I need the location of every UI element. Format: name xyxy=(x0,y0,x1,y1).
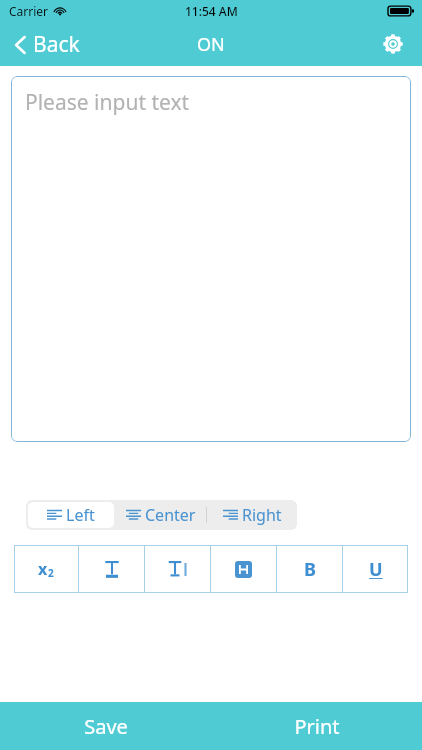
button[interactable]: Save xyxy=(0,702,211,750)
staticText: 11:54 AM xyxy=(185,3,238,19)
button[interactable]: Right xyxy=(207,500,297,530)
button[interactable]: Left xyxy=(28,502,114,528)
staticText: U xyxy=(369,557,383,582)
staticText: Carrier xyxy=(9,3,49,19)
staticText: Right xyxy=(242,504,282,526)
staticText: x xyxy=(38,558,48,580)
staticText: Center xyxy=(145,504,196,526)
staticText: Back xyxy=(33,30,80,59)
button[interactable]: Center xyxy=(116,500,206,530)
staticText: Print xyxy=(294,713,340,740)
staticText: B xyxy=(304,557,316,582)
button[interactable]: Underline xyxy=(343,545,408,593)
staticText: Please input text xyxy=(25,88,190,117)
button[interactable]: Settings xyxy=(374,25,412,63)
staticText: Left xyxy=(66,504,95,526)
staticText: Save xyxy=(84,713,128,740)
button[interactable]: Print xyxy=(211,702,422,750)
button[interactable]: Back xyxy=(10,26,84,63)
button[interactable]: Bold xyxy=(277,545,342,593)
staticText: ON xyxy=(197,32,225,57)
button[interactable]: Subscript xyxy=(14,545,78,593)
staticText: 2 xyxy=(48,566,54,580)
button[interactable]: Text color xyxy=(79,545,144,593)
button[interactable]: Please input text xyxy=(11,76,411,442)
button[interactable]: Text size xyxy=(145,545,210,593)
button[interactable]: Highlight xyxy=(211,545,276,593)
